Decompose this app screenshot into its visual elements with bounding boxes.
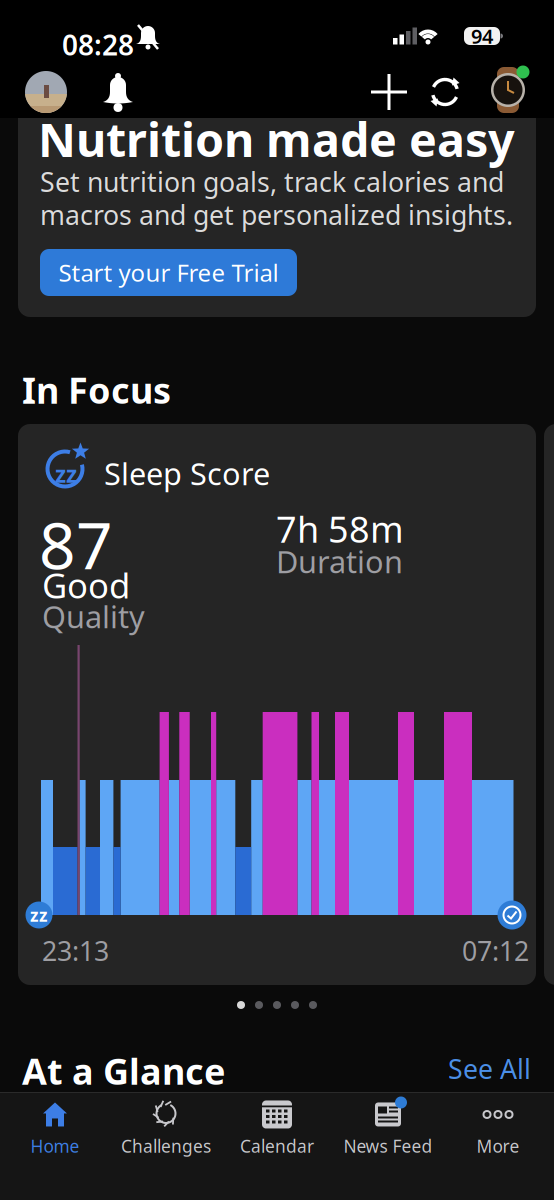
staticText: 94 [471, 23, 493, 49]
staticText: Home [30, 1134, 79, 1157]
button[interactable]: zz [0, 0, 554, 1200]
button[interactable] [429, 76, 461, 108]
staticText: 7h 58m [276, 505, 404, 553]
staticText: At a Glance [22, 1047, 225, 1095]
button[interactable] [490, 66, 526, 114]
button[interactable] [371, 74, 407, 110]
staticText: 23:13 [42, 933, 109, 968]
staticText: Challenges [121, 1134, 211, 1157]
staticText: Sleep Score [104, 453, 270, 494]
staticText: zz [30, 903, 48, 926]
staticText: Nutrition made easy [38, 108, 515, 170]
staticText: Quality [42, 596, 145, 637]
button[interactable]: Start your Free Trial [40, 249, 297, 296]
staticText: 07:12 [462, 933, 529, 968]
button[interactable] [25, 71, 67, 113]
button[interactable]: News Feed [335, 1093, 441, 1163]
staticText: 08:28 [62, 26, 134, 63]
button[interactable]: Home [2, 1093, 108, 1163]
staticText: Start your Free Trial [58, 257, 278, 288]
staticText: Calendar [240, 1134, 314, 1157]
staticText: Good [42, 562, 130, 608]
button[interactable] [101, 71, 135, 113]
staticText: More [476, 1134, 519, 1157]
button[interactable]: More [445, 1093, 551, 1163]
staticText: News Feed [343, 1134, 432, 1157]
staticText: 87 [39, 502, 113, 587]
staticText: Set nutrition goals, track calories and [40, 164, 504, 199]
staticText: zz [55, 459, 77, 489]
button[interactable]: Challenges [113, 1093, 219, 1163]
staticText: macros and get personalized insights. [40, 197, 513, 232]
staticText: See All [448, 1051, 531, 1086]
button[interactable]: See All [448, 1051, 531, 1086]
button[interactable]: Calendar [224, 1093, 330, 1163]
staticText: Duration [276, 541, 403, 582]
staticText: In Focus [22, 366, 171, 414]
